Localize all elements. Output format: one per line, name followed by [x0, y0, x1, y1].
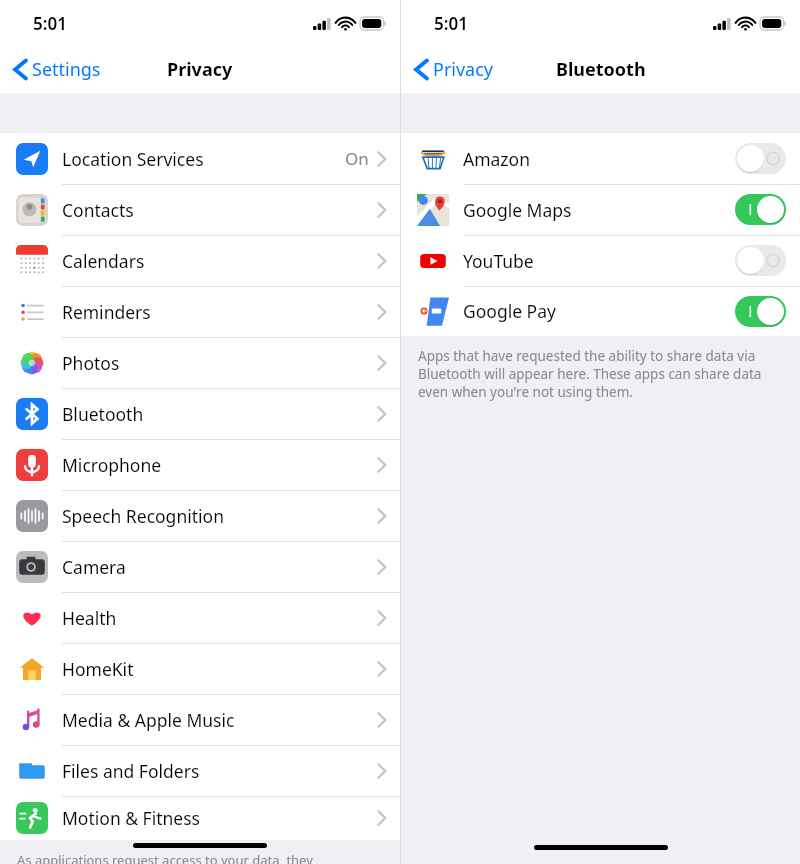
button[interactable]: Motion & Fitness	[0, 796, 400, 840]
staticText: Motion & Fitness	[62, 806, 200, 830]
button[interactable]: Camera	[0, 541, 400, 592]
staticText: Reminders	[62, 300, 151, 324]
staticText: Amazon	[463, 147, 530, 171]
button[interactable]: Microphone	[0, 439, 400, 490]
staticText: YouTube	[463, 249, 534, 273]
staticText: Settings	[32, 57, 101, 82]
button[interactable]: YouTube	[401, 235, 800, 286]
button[interactable]: Privacy	[411, 53, 498, 86]
staticText: Speech Recognition	[62, 504, 224, 528]
button[interactable]: Health	[0, 592, 400, 643]
button[interactable]: Google Maps	[401, 184, 800, 235]
button[interactable]: HomeKit	[0, 643, 400, 694]
button[interactable]: Amazon	[401, 133, 800, 184]
button[interactable]: Toggle off	[735, 143, 786, 174]
staticText: Media & Apple Music	[62, 708, 235, 732]
staticText: Bluetooth	[556, 57, 646, 82]
button[interactable]: Speech Recognition	[0, 490, 400, 541]
button[interactable]: Toggle on	[735, 194, 786, 225]
button[interactable]: Settings	[10, 53, 105, 86]
button[interactable]: Google Pay	[401, 286, 800, 336]
button[interactable]: Toggle on	[735, 296, 786, 327]
staticText: 5:01	[434, 12, 468, 35]
button[interactable]: Media & Apple Music	[0, 694, 400, 745]
staticText: Contacts	[62, 198, 134, 222]
staticText: Location Services	[62, 147, 204, 171]
staticText: Microphone	[62, 453, 162, 477]
staticText: 5:01	[33, 12, 67, 35]
staticText: Photos	[62, 351, 120, 375]
staticText: Camera	[62, 555, 126, 579]
staticText: Privacy	[167, 57, 233, 82]
button[interactable]: Files and Folders	[0, 745, 400, 796]
staticText: Bluetooth	[62, 402, 144, 426]
button[interactable]: Calendars	[0, 235, 400, 286]
button[interactable]: Bluetooth	[0, 388, 400, 439]
staticText: Calendars	[62, 249, 145, 273]
staticText: Health	[62, 606, 117, 630]
staticText: On	[345, 147, 369, 170]
button[interactable]: Photos	[0, 337, 400, 388]
staticText: HomeKit	[62, 657, 134, 681]
button[interactable]: Toggle off	[735, 245, 786, 276]
staticText: Google Pay	[463, 299, 556, 323]
button[interactable]: Reminders	[0, 286, 400, 337]
staticText: Privacy	[433, 57, 494, 82]
staticText: Apps that have requested the ability to …	[418, 347, 782, 401]
staticText: As applications request access to your d…	[17, 851, 313, 864]
staticText: Google Maps	[463, 198, 572, 222]
button[interactable]: Location Services	[0, 133, 400, 184]
staticText: Files and Folders	[62, 759, 200, 783]
button[interactable]: Contacts	[0, 184, 400, 235]
